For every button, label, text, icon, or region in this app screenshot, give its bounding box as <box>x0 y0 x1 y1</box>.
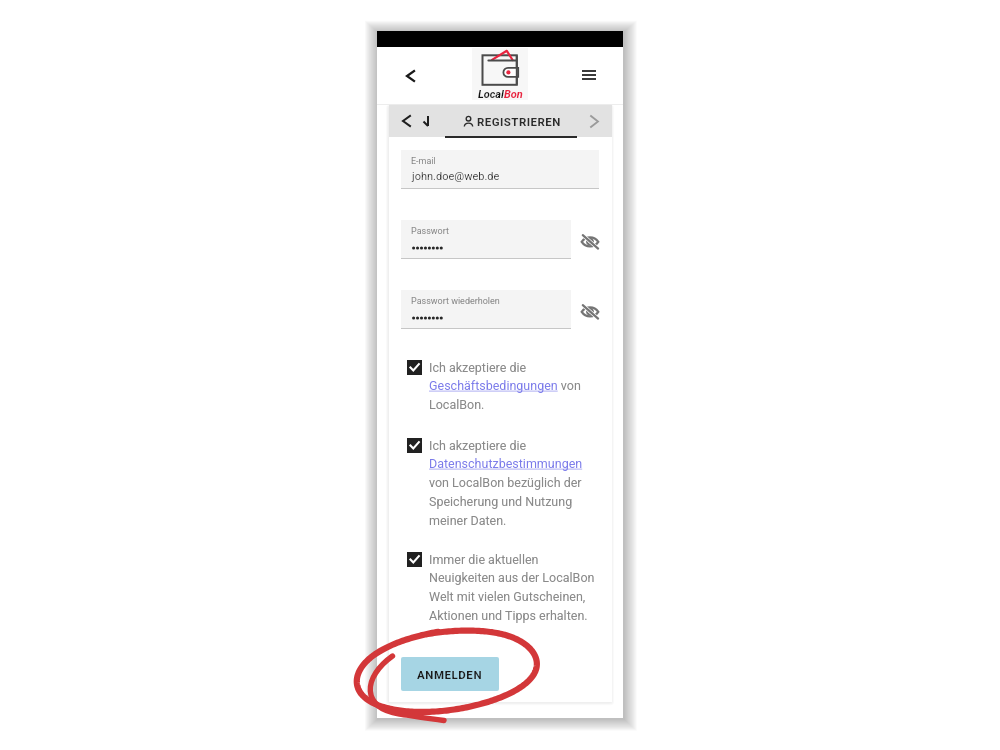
button[interactable]: E-mail <box>401 150 599 188</box>
button[interactable]: Ich akzeptiere die Geschäftsbedingungen … <box>407 359 607 412</box>
staticText: Ich akzeptiere die Datenschutzbestimmung… <box>429 438 583 529</box>
staticText: LocalBon <box>478 88 523 101</box>
staticText: Immer die aktuellen Neuigkeiten aus der … <box>429 552 595 624</box>
staticText: ANMELDEN <box>417 668 483 681</box>
button[interactable]: Ich akzeptiere die Datenschutzbestimmung… <box>407 437 607 528</box>
button[interactable]: Back <box>398 63 422 87</box>
button[interactable]: Passwort <box>401 220 571 258</box>
button[interactable]: Next tab <box>583 105 605 137</box>
button[interactable]: Passwort wiederholen <box>401 290 571 328</box>
button[interactable]: REGISTRIEREN <box>459 105 554 137</box>
staticText: Passwort <box>411 226 449 237</box>
button[interactable]: Show password <box>577 230 603 252</box>
button[interactable]: Show password <box>577 300 603 322</box>
button[interactable]: Menu <box>577 62 601 86</box>
staticText: E-mail <box>411 156 436 167</box>
button[interactable]: Immer die aktuellen Neuigkeiten aus der … <box>407 551 607 623</box>
button[interactable]: Login tab <box>417 105 434 137</box>
button[interactable]: Previous tab <box>395 105 417 137</box>
button[interactable]: ANMELDEN <box>401 657 499 691</box>
staticText: john.doe@web.de <box>412 170 500 183</box>
staticText: Ich akzeptiere die Geschäftsbedingungen … <box>429 360 581 413</box>
staticText: Passwort wiederholen <box>411 296 500 307</box>
staticText: REGISTRIEREN <box>477 115 561 128</box>
